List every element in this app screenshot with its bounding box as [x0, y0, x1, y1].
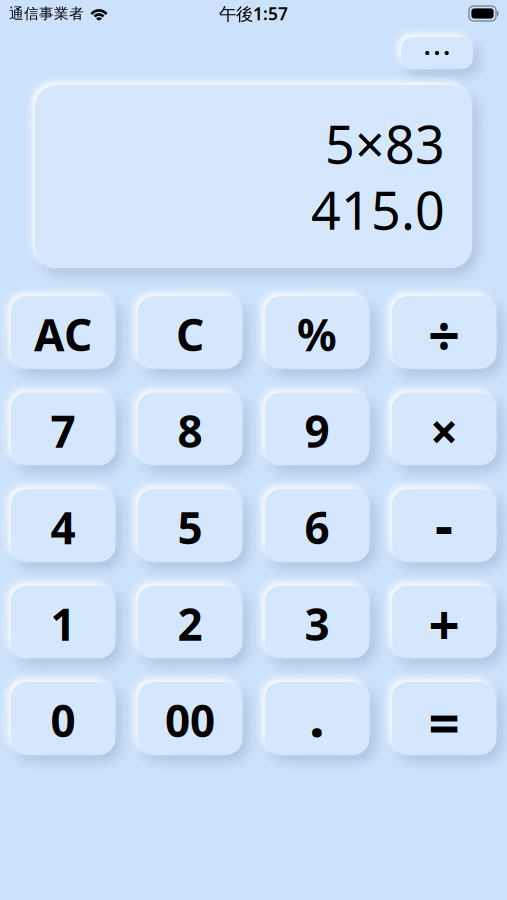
staticText: AC — [34, 305, 92, 363]
button[interactable]: ÷ — [392, 296, 496, 368]
staticText: % — [297, 305, 337, 363]
button[interactable]: C — [138, 296, 242, 368]
staticText: 00 — [165, 691, 215, 749]
button[interactable]: 5 — [138, 489, 242, 561]
staticText: = — [428, 686, 459, 759]
staticText: 7 — [50, 401, 75, 460]
button[interactable]: + — [392, 585, 496, 658]
staticText: 415.0 — [311, 175, 445, 244]
staticText: + — [428, 587, 459, 660]
button[interactable]: 3 — [265, 585, 369, 658]
button[interactable]: = — [392, 682, 496, 754]
staticText: 9 — [304, 401, 329, 460]
button[interactable]: - — [392, 489, 496, 561]
button[interactable]: 0 — [11, 682, 115, 754]
button[interactable]: 2 — [138, 585, 242, 658]
staticText: 通信事業者 — [9, 4, 84, 22]
staticText: × — [430, 398, 458, 463]
staticText: - — [435, 486, 453, 560]
button[interactable]: AC — [11, 296, 115, 368]
staticText: 5 — [177, 498, 202, 556]
button[interactable]: メニュー — [401, 37, 473, 69]
staticText: ÷ — [428, 297, 460, 371]
button[interactable]: 9 — [265, 392, 369, 465]
button[interactable]: × — [392, 392, 496, 465]
staticText: 1 — [50, 594, 75, 653]
staticText: 8 — [177, 401, 202, 460]
staticText: 3 — [304, 594, 329, 653]
button[interactable]: 6 — [265, 489, 369, 561]
staticText: 5×83 — [325, 109, 445, 178]
button[interactable]: 7 — [11, 392, 115, 465]
button[interactable]: 8 — [138, 392, 242, 465]
staticText: 6 — [304, 498, 329, 556]
staticText: . — [309, 678, 325, 752]
staticText: C — [176, 305, 204, 363]
staticText: 0 — [50, 691, 75, 749]
button[interactable]: % — [265, 296, 369, 368]
button[interactable]: . — [265, 682, 369, 754]
button[interactable]: 00 — [138, 682, 242, 754]
staticText: 2 — [177, 594, 202, 653]
staticText: 午後1:57 — [219, 2, 288, 25]
staticText: 4 — [50, 498, 75, 556]
button[interactable]: 1 — [11, 585, 115, 658]
button[interactable]: 4 — [11, 489, 115, 561]
